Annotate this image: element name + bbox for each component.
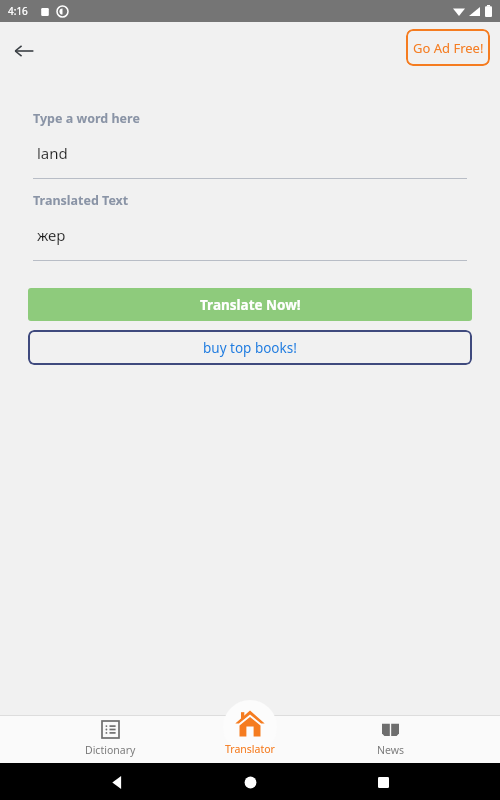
staticText: Translated Text	[33, 192, 129, 209]
staticText: жер	[37, 225, 66, 245]
button[interactable]: News	[335, 715, 445, 763]
button[interactable]: Back	[100, 765, 134, 799]
button[interactable]: Back	[4, 31, 44, 71]
staticText: buy top books!	[203, 339, 297, 357]
button[interactable]: Recents	[366, 765, 400, 799]
button[interactable]: Go Ad Free!	[406, 29, 490, 66]
staticText: Type a word here	[33, 110, 140, 127]
staticText: Dictionary	[85, 743, 136, 757]
button[interactable]: Translator	[223, 700, 277, 754]
staticText: 4:16	[8, 4, 28, 18]
button[interactable]: Home	[233, 765, 267, 799]
staticText: land	[37, 143, 68, 163]
button[interactable]: buy top books!	[28, 330, 472, 365]
button[interactable]: Dictionary	[55, 715, 165, 763]
staticText: News	[377, 743, 404, 757]
staticText: Translate Now!	[200, 296, 301, 314]
staticText: Translator	[225, 742, 275, 756]
staticText: Go Ad Free!	[413, 39, 484, 57]
button[interactable]: Translate Now!	[28, 288, 472, 321]
